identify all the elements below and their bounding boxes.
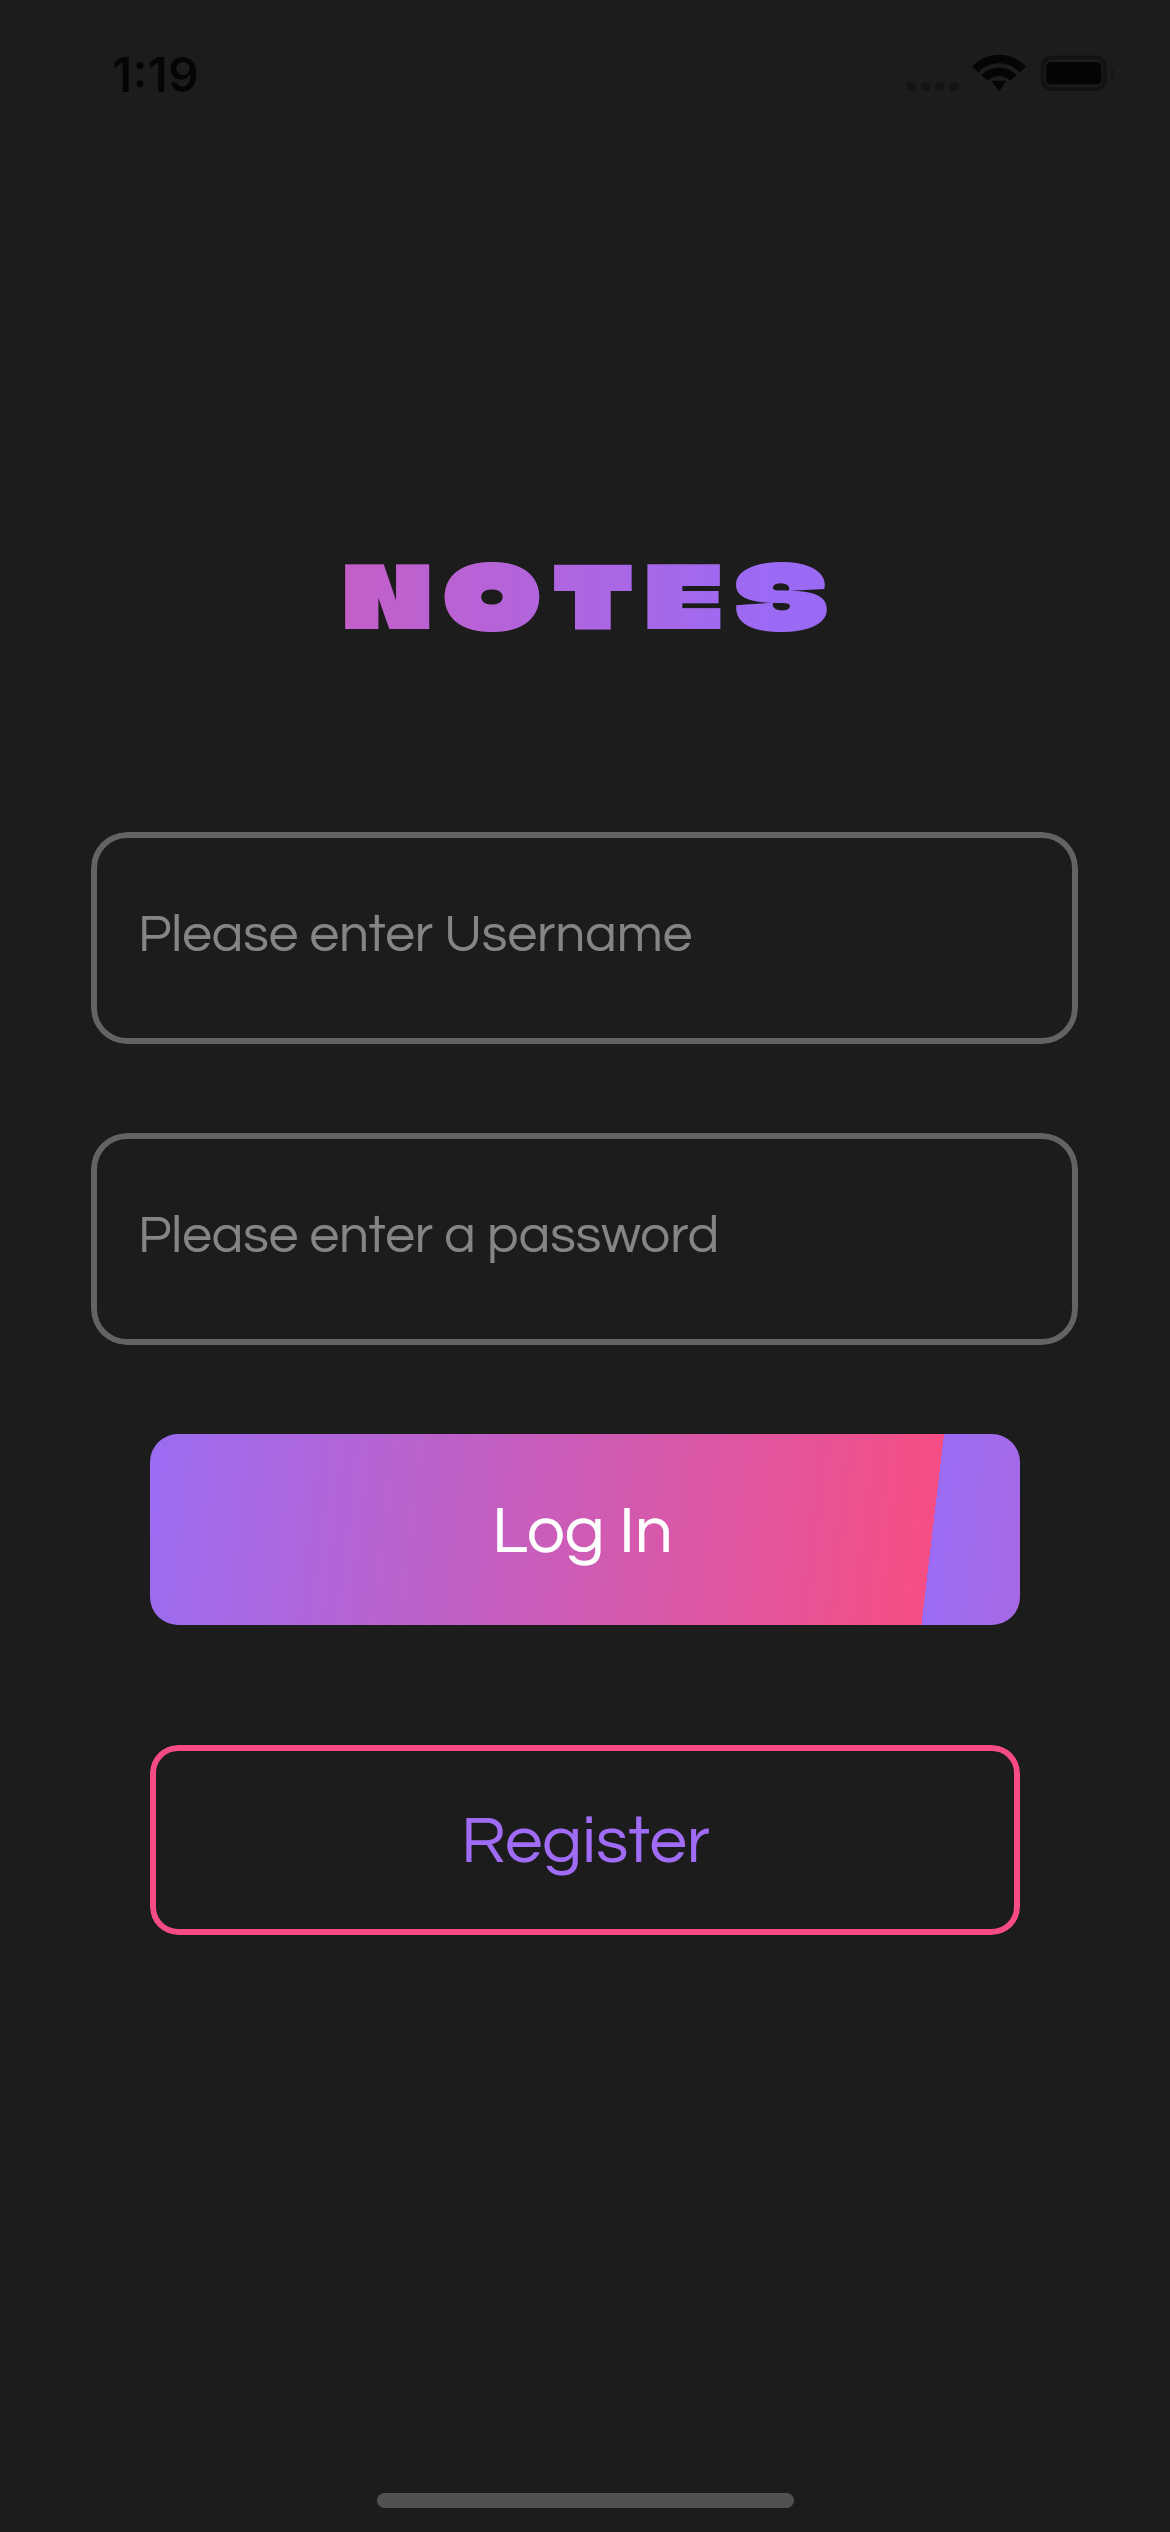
staticText: NOTES <box>343 537 841 651</box>
button[interactable]: Log In <box>150 1434 1020 1625</box>
other: Home indicator <box>377 2493 794 2508</box>
other: Battery full <box>1038 52 1122 97</box>
button[interactable]: Please enter a password <box>91 1133 1078 1345</box>
button[interactable]: Please enter Username <box>91 832 1078 1044</box>
staticText: Log In <box>492 1497 673 1566</box>
staticText: Register <box>461 1807 710 1876</box>
staticText: Please enter a password <box>138 1209 720 1264</box>
other: Cellular signal <box>907 81 967 95</box>
staticText: 1:19 <box>112 45 199 103</box>
button[interactable]: Register <box>150 1745 1020 1935</box>
other: Wi-Fi <box>967 50 1031 95</box>
staticText: Please enter Username <box>138 908 693 963</box>
